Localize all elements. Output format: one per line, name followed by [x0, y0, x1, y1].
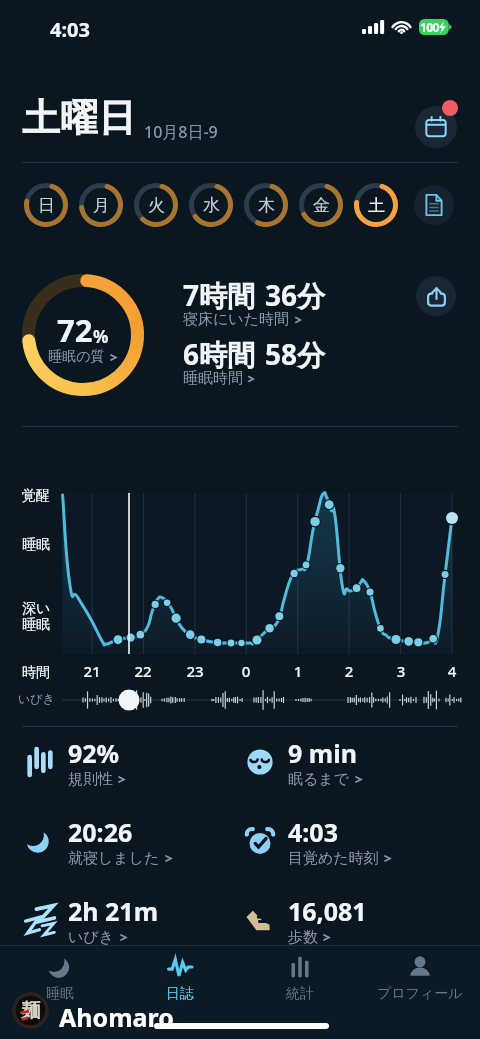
staticText: 寝床にいた時間: [183, 310, 290, 329]
staticText: 土曜日: [22, 94, 136, 142]
staticText: 覚醒: [22, 487, 50, 505]
button[interactable]: 火: [133, 182, 179, 228]
button[interactable]: 統計: [240, 948, 360, 1002]
button[interactable]: [22, 274, 144, 396]
staticText: 睡眠の質: [48, 348, 105, 366]
staticText: 日誌: [166, 985, 194, 1002]
staticText: 9 min: [288, 736, 357, 770]
button[interactable]: 睡眠: [0, 948, 120, 1002]
staticText: 4:03: [288, 815, 338, 849]
button[interactable]: 9 min: [234, 733, 456, 791]
button[interactable]: 20:26: [14, 812, 236, 870]
button[interactable]: 睡眠時間: [183, 369, 255, 388]
staticText: 規則性: [68, 770, 113, 789]
staticText: 麺: [21, 999, 40, 1023]
staticText: Ahomaro: [59, 1000, 174, 1034]
staticText: 睡眠: [46, 985, 74, 1002]
staticText: 統計: [286, 985, 314, 1002]
button[interactable]: 月: [78, 182, 124, 228]
staticText: 睡眠: [22, 616, 50, 634]
staticText: 36分: [265, 276, 326, 314]
button[interactable]: 日: [23, 182, 69, 228]
staticText: 時間: [22, 664, 50, 682]
button[interactable]: 2h 21m: [14, 891, 236, 949]
staticText: 木: [258, 195, 275, 216]
staticText: 100: [420, 19, 439, 35]
button[interactable]: Calendar: [415, 106, 457, 148]
staticText: 土: [368, 195, 385, 216]
staticText: 0: [232, 661, 260, 681]
button[interactable]: 寝床にいた時間: [183, 310, 302, 329]
staticText: 火: [148, 195, 165, 216]
staticText: 92%: [68, 736, 120, 770]
button[interactable]: 16,081: [234, 891, 456, 949]
staticText: 6時間: [183, 335, 256, 373]
staticText: いびき: [68, 928, 115, 947]
button[interactable]: Notes: [414, 185, 454, 225]
button[interactable]: 木: [243, 182, 289, 228]
staticText: 月: [93, 195, 110, 216]
staticText: 歩数: [288, 928, 318, 947]
staticText: 金: [313, 195, 330, 216]
staticText: いびき: [18, 691, 55, 706]
staticText: 7時間: [183, 276, 256, 314]
button[interactable]: 92%: [14, 733, 236, 791]
button[interactable]: 7時間: [183, 276, 326, 314]
staticText: 20:26: [68, 815, 133, 849]
staticText: 58分: [265, 335, 326, 373]
staticText: 21: [78, 661, 106, 681]
staticText: 2: [335, 661, 363, 681]
staticText: 深い: [22, 600, 51, 618]
staticText: 4: [438, 661, 466, 681]
button[interactable]: 水: [188, 182, 234, 228]
staticText: 4:03: [50, 16, 90, 43]
button[interactable]: 金: [298, 182, 344, 228]
staticText: 23: [181, 661, 209, 681]
staticText: 72: [57, 309, 93, 351]
staticText: 16,081: [288, 894, 367, 928]
button[interactable]: 4:03: [234, 812, 456, 870]
staticText: 就寝しました: [68, 849, 160, 868]
staticText: 2h 21m: [68, 894, 159, 928]
staticText: 眠るまで: [288, 770, 350, 789]
staticText: プロフィール: [377, 985, 463, 1002]
staticText: 水: [203, 195, 220, 216]
staticText: %: [93, 325, 109, 348]
staticText: 10月8日-9: [144, 121, 218, 143]
staticText: 目覚めた時刻: [288, 849, 379, 868]
button[interactable]: プロフィール: [360, 948, 480, 1002]
button[interactable]: 日誌: [120, 948, 240, 1002]
staticText: 日: [38, 195, 55, 216]
staticText: 22: [129, 661, 157, 681]
button[interactable]: Share: [416, 276, 456, 316]
staticText: 睡眠: [22, 536, 50, 554]
staticText: 睡眠時間: [183, 369, 243, 388]
button[interactable]: 6時間: [183, 335, 326, 373]
button[interactable]: 土: [353, 182, 399, 228]
staticText: 3: [387, 661, 415, 681]
staticText: 1: [284, 661, 312, 681]
button[interactable]: 睡眠の質: [48, 348, 118, 366]
